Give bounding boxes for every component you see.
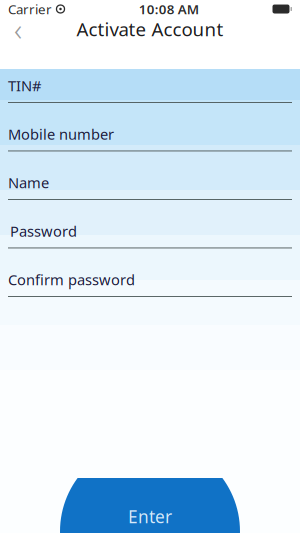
staticText: TIN# xyxy=(8,76,41,95)
button[interactable]: Password xyxy=(0,214,300,263)
button[interactable]: Name xyxy=(0,166,300,214)
staticText: Enter xyxy=(128,505,172,528)
button[interactable]: Enter xyxy=(0,478,300,533)
staticText: Name xyxy=(8,173,49,192)
staticText: Confirm password xyxy=(8,270,135,289)
staticText: Password xyxy=(10,221,77,241)
button[interactable]: Mobile number xyxy=(0,117,300,166)
staticText: Activate Account xyxy=(76,17,223,41)
staticText: ‹ xyxy=(14,9,22,49)
staticText: 10:08 AM xyxy=(139,0,199,18)
button[interactable]: Back xyxy=(0,18,36,40)
button[interactable]: Confirm password xyxy=(0,263,300,311)
staticText: Mobile number xyxy=(8,124,114,144)
staticText: Carrier xyxy=(8,0,52,18)
button[interactable]: TIN# xyxy=(0,69,300,117)
